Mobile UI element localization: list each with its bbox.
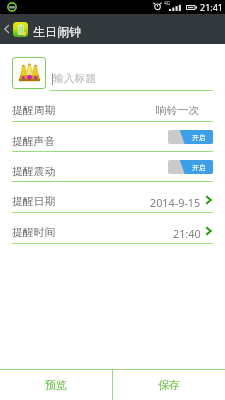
- staticText: 21:41: [200, 1, 224, 13]
- button[interactable]: Toggle on: [168, 160, 213, 174]
- staticText: 保存: [158, 378, 180, 392]
- button[interactable]: 提醒日期: [0, 182, 225, 213]
- staticText: 生日闹钟: [33, 24, 82, 39]
- button[interactable]: 提醒时间: [0, 213, 225, 244]
- staticText: 开启: [192, 133, 206, 142]
- staticText: 提醒声音: [12, 135, 56, 149]
- button[interactable]: Back: [0, 14, 13, 44]
- staticText: 响铃一次: [156, 104, 200, 118]
- staticText: 提醒周期: [12, 104, 56, 118]
- staticText: 提醒时间: [12, 226, 56, 240]
- staticText: 提醒震动: [12, 165, 56, 179]
- staticText: 预览: [45, 378, 67, 392]
- staticText: 输入标题: [53, 72, 97, 86]
- button[interactable]: 提醒声音: [0, 122, 225, 152]
- staticText: 提醒日期: [12, 195, 56, 209]
- button[interactable]: 预览: [0, 370, 112, 400]
- button[interactable]: 提醒周期: [0, 90, 225, 122]
- button[interactable]: 提醒震动: [0, 152, 225, 182]
- staticText: 开启: [192, 163, 206, 172]
- staticText: 2014-9-15: [150, 195, 201, 210]
- staticText: 21:40: [173, 226, 201, 241]
- button[interactable]: Toggle on: [168, 130, 213, 144]
- staticText: 4G: [164, 0, 171, 7]
- button[interactable]: Choose icon: [12, 57, 46, 89]
- button[interactable]: 保存: [113, 370, 225, 400]
